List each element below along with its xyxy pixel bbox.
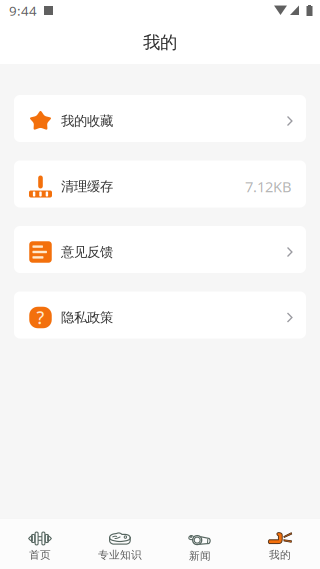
staticText: 我的收藏 — [61, 113, 113, 129]
button[interactable]: 专业知识 — [80, 518, 160, 569]
staticText: 我的 — [269, 548, 291, 562]
button[interactable]: 清理缓存 — [14, 160, 306, 207]
staticText: 专业知识 — [98, 548, 142, 562]
staticText: 9:44 — [9, 2, 37, 19]
staticText: 我的 — [143, 32, 177, 53]
staticText: ? — [36, 306, 44, 329]
staticText: 7.12KB — [245, 177, 292, 196]
staticText: 意见反馈 — [61, 244, 113, 260]
staticText: 隐私政策 — [61, 309, 113, 326]
button[interactable]: 意见反馈 — [14, 226, 306, 273]
staticText: 清理缓存 — [61, 178, 113, 195]
button[interactable]: ? — [14, 291, 306, 338]
staticText: 新闻 — [189, 549, 211, 563]
staticText: 首页 — [29, 548, 51, 562]
button[interactable]: 我的 — [240, 518, 320, 569]
button[interactable]: 首页 — [0, 518, 80, 569]
button[interactable]: 新闻 — [160, 518, 240, 569]
button[interactable]: 我的收藏 — [14, 95, 306, 142]
